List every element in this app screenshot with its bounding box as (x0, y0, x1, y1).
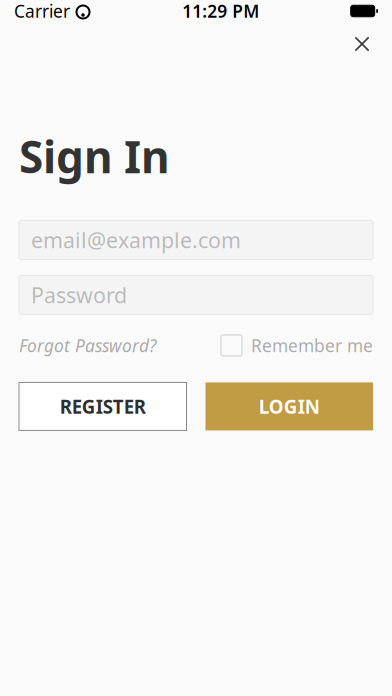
button[interactable]: REGISTER (19, 382, 186, 430)
button[interactable]: Forgot Password? (19, 334, 156, 357)
staticText: LOGIN (259, 394, 320, 419)
staticText: email@example.com (31, 226, 241, 254)
button[interactable]: LOGIN (205, 382, 373, 430)
staticText: Password (31, 281, 127, 309)
staticText: Sign In (19, 127, 170, 185)
button[interactable]: Close (340, 22, 384, 66)
staticText: Remember me (251, 334, 373, 357)
button[interactable]: Remember me (221, 334, 373, 357)
staticText: Forgot Password? (19, 334, 156, 357)
staticText: Carrier (14, 0, 70, 22)
staticText: REGISTER (60, 394, 146, 419)
staticText: 11:29 PM (182, 0, 259, 22)
